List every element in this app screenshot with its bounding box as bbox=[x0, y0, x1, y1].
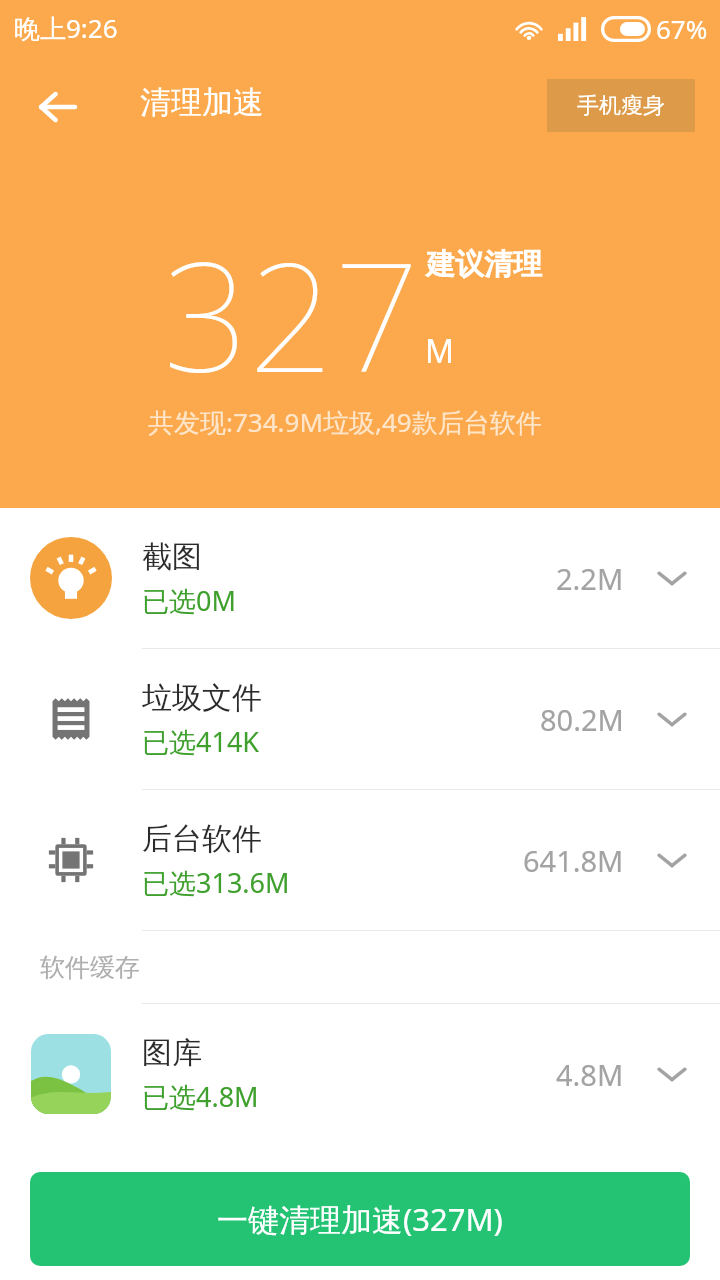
button[interactable]: 图库 bbox=[0, 1004, 720, 1144]
staticText: 晚上9:26 bbox=[14, 10, 118, 46]
staticText: 67% bbox=[656, 11, 708, 46]
button[interactable]: 垃圾文件 bbox=[0, 649, 720, 789]
staticText: 清理加速 bbox=[140, 83, 264, 122]
staticText: 一键清理加速(327M) bbox=[217, 1198, 503, 1240]
staticText: 建议清理 bbox=[426, 246, 542, 283]
staticText: 已选313.6M bbox=[142, 864, 290, 901]
button[interactable]: Back bbox=[22, 72, 92, 142]
staticText: M bbox=[425, 329, 455, 373]
staticText: 327 bbox=[163, 212, 420, 416]
staticText: 共发现:734.9M垃圾,49款后台软件 bbox=[148, 404, 542, 440]
button[interactable]: 后台软件 bbox=[0, 790, 720, 930]
staticText: 手机瘦身 bbox=[577, 92, 665, 120]
staticText: 80.2M bbox=[540, 700, 624, 739]
staticText: 已选0M bbox=[142, 582, 236, 619]
staticText: 4.8M bbox=[556, 1055, 624, 1094]
staticText: 后台软件 bbox=[142, 820, 262, 858]
button[interactable]: 手机瘦身 bbox=[547, 79, 695, 132]
staticText: 641.8M bbox=[523, 841, 624, 880]
staticText: 图库 bbox=[142, 1034, 202, 1072]
staticText: 已选414K bbox=[142, 723, 260, 760]
staticText: 截图 bbox=[142, 538, 202, 576]
staticText: 垃圾文件 bbox=[142, 679, 262, 717]
staticText: 软件缓存 bbox=[40, 952, 140, 983]
button[interactable]: 一键清理加速(327M) bbox=[30, 1172, 690, 1266]
staticText: 2.2M bbox=[556, 559, 624, 598]
button[interactable]: 截图 bbox=[0, 508, 720, 648]
staticText: 已选4.8M bbox=[142, 1078, 259, 1115]
